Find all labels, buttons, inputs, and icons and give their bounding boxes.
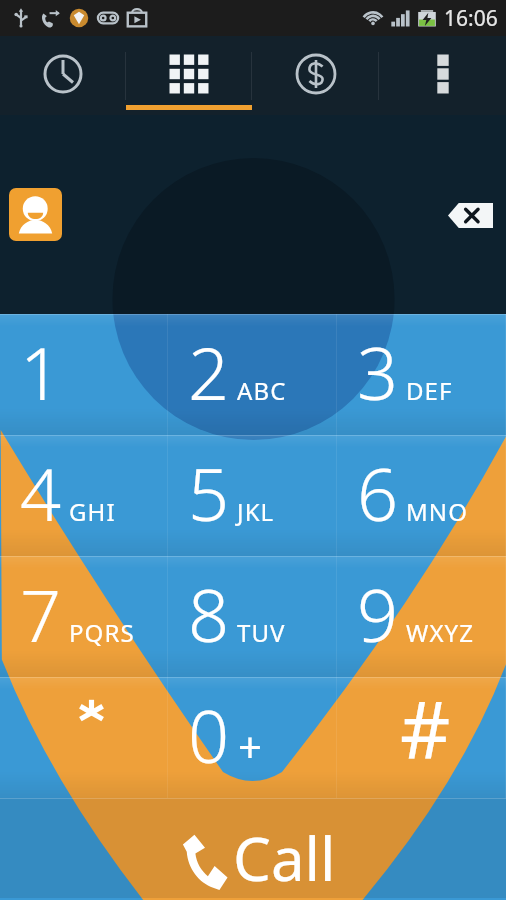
button[interactable]: More options xyxy=(379,36,506,115)
staticText: JKL xyxy=(237,495,275,528)
staticText: 1 xyxy=(20,323,62,421)
staticText: DEF xyxy=(406,374,453,407)
staticText: 2 xyxy=(188,323,230,421)
button[interactable] xyxy=(0,677,168,798)
staticText: 3 xyxy=(357,323,399,421)
staticText: PQRS xyxy=(69,616,135,649)
button[interactable]: 8 xyxy=(168,556,337,677)
staticText: 9 xyxy=(357,565,399,663)
staticText: 5 xyxy=(188,444,230,542)
button[interactable]: # xyxy=(337,677,506,798)
button[interactable]: 4 xyxy=(0,435,168,556)
button[interactable]: 9 xyxy=(337,556,506,677)
button[interactable]: Backspace xyxy=(434,189,506,241)
staticText: 7 xyxy=(20,565,62,663)
button[interactable]: 3 xyxy=(337,314,506,435)
button[interactable]: Contacts xyxy=(9,188,62,241)
staticText: # xyxy=(400,675,451,781)
button[interactable]: 0 xyxy=(168,677,337,798)
staticText: 0 xyxy=(188,686,230,784)
staticText: TUV xyxy=(237,616,286,649)
button[interactable]: 7 xyxy=(0,556,168,677)
button[interactable]: 6 xyxy=(337,435,506,556)
button[interactable]: 5 xyxy=(168,435,337,556)
staticText: 16:06 xyxy=(444,4,498,33)
staticText: 6 xyxy=(357,444,399,542)
staticText: ABC xyxy=(237,374,287,407)
staticText: GHI xyxy=(69,495,116,528)
staticText: + xyxy=(238,718,263,775)
button[interactable]: 1 xyxy=(0,314,168,435)
button[interactable]: Keypad xyxy=(126,36,252,115)
button[interactable]: Billing xyxy=(252,36,379,115)
staticText: MNO xyxy=(406,495,469,528)
button[interactable]: Recent calls xyxy=(0,36,126,115)
button[interactable]: 2 xyxy=(168,314,337,435)
staticText: 4 xyxy=(20,444,62,542)
staticText: 8 xyxy=(188,565,230,663)
button[interactable]: Call xyxy=(0,798,506,898)
staticText: Call xyxy=(233,817,336,899)
staticText: WXYZ xyxy=(406,616,475,649)
